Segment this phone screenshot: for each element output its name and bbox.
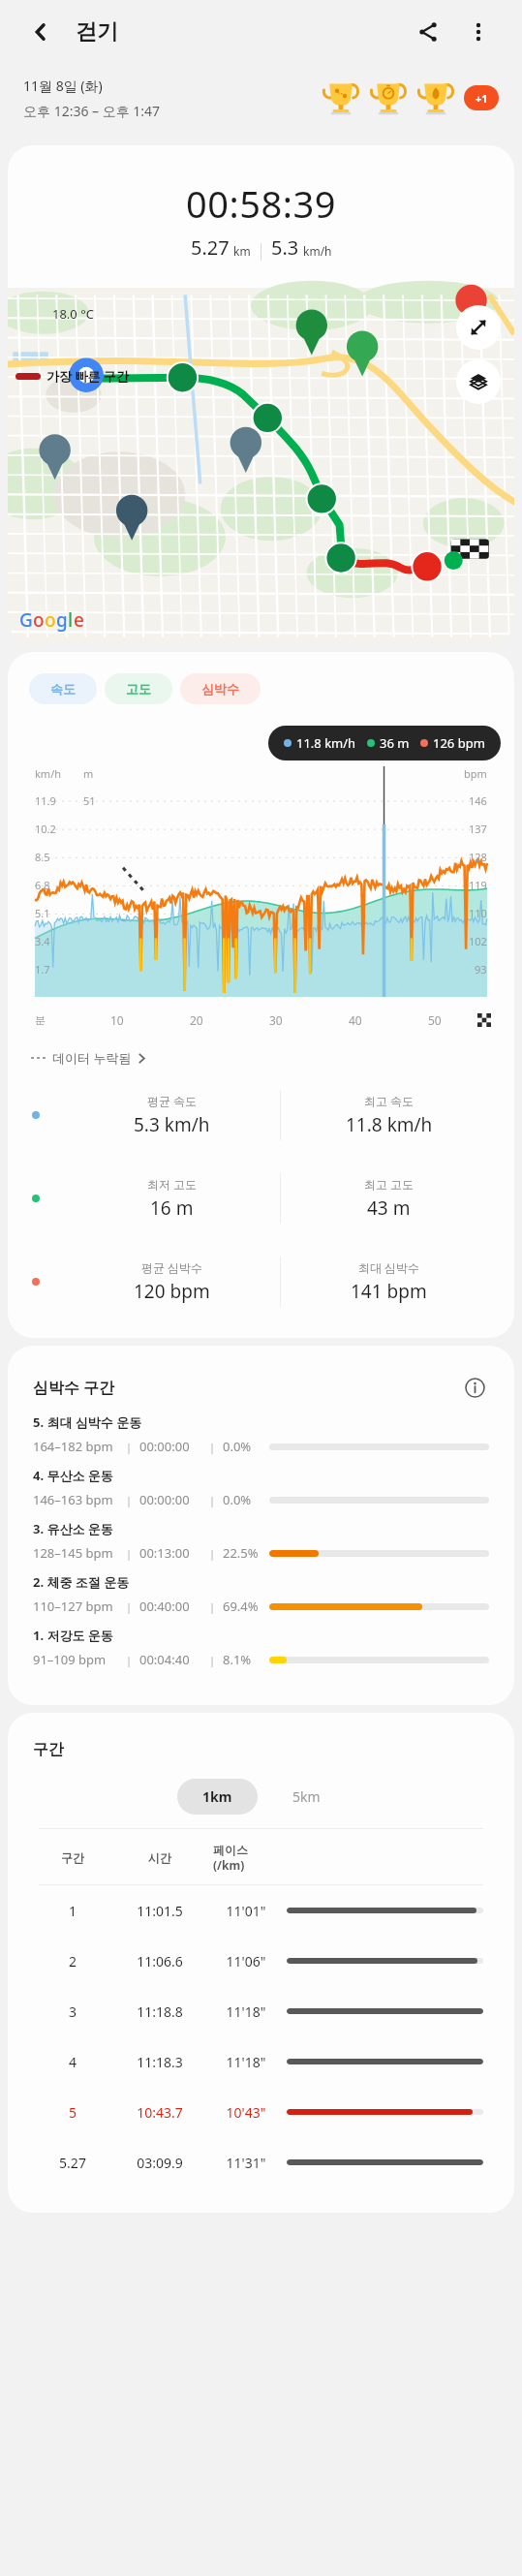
staticText: 5.3 km/h [134,1112,210,1137]
staticText: 11'01" [213,1902,279,1920]
staticText: | [126,1546,133,1561]
staticText: 03:09.9 [107,2154,213,2172]
staticText: 8.1% [223,1651,265,1668]
staticText: 00:00:00 [139,1491,209,1508]
staticText: km [233,243,251,259]
button[interactable]: 5km [267,1779,346,1815]
staticText: 110 [469,906,487,920]
staticText: 36 m [380,734,410,752]
button[interactable]: 2 [8,1936,514,1986]
staticText: 8.5 [35,850,50,864]
staticText: 오후 12:36 – 오후 1:47 [23,102,161,120]
button[interactable] [322,78,360,117]
button[interactable]: Back [21,13,60,51]
button[interactable]: 1. 저강도 운동 [8,1627,514,1680]
button[interactable]: 속도 [29,673,97,704]
staticText: 구간 [33,1740,64,1759]
button[interactable]: Route map [8,288,514,644]
staticText: 걷기 [76,18,118,46]
button[interactable]: 1km [177,1779,258,1815]
staticText: 110–127 bpm [33,1598,126,1615]
staticText: 속도 [50,681,76,697]
staticText: 1km [202,1787,232,1806]
staticText: 00:04:40 [139,1651,209,1668]
staticText: 4 [39,2053,107,2071]
button[interactable]: 고도 [105,673,172,704]
button[interactable]: 2. 체중 조절 운동 [8,1573,514,1627]
staticText: 10:43.7 [107,2103,213,2122]
staticText: 3.4 [35,934,50,948]
staticText: | [209,1546,216,1561]
staticText: 43 m [367,1195,411,1221]
staticText: 구간 [39,1850,107,1865]
staticText: 119 [469,878,487,892]
button[interactable]: Share [408,12,448,52]
button[interactable]: Expand map [456,305,501,350]
staticText: 6.8 [35,878,50,892]
staticText: 91–109 bpm [33,1651,126,1668]
staticText: 평균 심박수 [141,1259,203,1275]
button[interactable]: More options [458,12,499,52]
staticText: | [209,1599,216,1614]
staticText: e [74,607,84,633]
staticText: 고도 [126,681,151,697]
staticText: 0.0% [223,1438,265,1455]
button[interactable]: 3 [8,1986,514,2036]
staticText: 5.27 [191,234,230,261]
button[interactable]: 5.27 [8,2137,514,2188]
button[interactable]: 4 [8,2036,514,2087]
button[interactable]: 5. 최대 심박수 운동 [8,1413,514,1467]
button[interactable]: +1 [464,85,499,110]
staticText: bpm [464,766,487,781]
button[interactable]: 5 [8,2087,514,2137]
staticText: | [126,1493,133,1507]
staticText: 69.4% [223,1598,265,1615]
staticText: 5km [292,1787,321,1806]
staticText: 최저 고도 [147,1176,198,1192]
staticText: 11:18.8 [107,2002,213,2021]
staticText: 1 [39,1902,107,1920]
staticText: 5.3 [271,234,299,261]
staticText: 1. 저강도 운동 [33,1627,113,1644]
staticText: 3 [39,2002,107,2021]
staticText: 126 bpm [433,734,485,752]
staticText: 20 [190,1012,203,1028]
staticText: 5 [39,2103,107,2122]
staticText: 164–182 bpm [33,1438,126,1455]
staticText: 11:06.6 [107,1952,213,1971]
button[interactable]: 1 [8,1885,514,1936]
staticText: (/km) [213,1857,245,1873]
button[interactable]: 4. 무산소 운동 [8,1467,514,1520]
staticText: 141 bpm [351,1279,427,1304]
button[interactable]: 데이터 누락됨 [31,1049,147,1067]
staticText: 5. 최대 심박수 운동 [33,1413,142,1431]
staticText: 128 [469,850,487,864]
staticText: 가장 빠른 구간 [46,367,129,385]
staticText: 5.27 [39,2154,107,2172]
staticText: 11'31" [213,2154,279,2172]
staticText: 102 [469,934,487,948]
staticText: 11.8 km/h [296,734,356,752]
staticText: | [209,1653,216,1667]
staticText: 16 m [150,1195,194,1221]
staticText: 00:40:00 [139,1598,209,1615]
staticText: 146 [469,793,487,808]
staticText: G [19,607,33,633]
staticText: km/h [303,243,332,259]
staticText: | [126,1599,133,1614]
button[interactable]: Heart rate zone info [460,1373,489,1402]
staticText: 심박수 구간 [33,1377,460,1398]
button[interactable]: 심박수 [180,673,261,704]
staticText: 137 [469,822,487,836]
button[interactable]: 00:58:39 [8,145,514,644]
staticText: 00:00:00 [139,1438,209,1455]
button[interactable]: 3. 유산소 운동 [8,1520,514,1573]
button[interactable] [416,78,455,117]
button[interactable]: Map layers [456,359,501,404]
button[interactable] [369,78,408,117]
staticText: 분 [35,1013,46,1027]
staticText: 11월 8일 (화) [23,77,103,95]
staticText: 심박수 [201,681,239,697]
staticText: 0.0% [223,1491,265,1508]
staticText: 40 [349,1012,362,1028]
